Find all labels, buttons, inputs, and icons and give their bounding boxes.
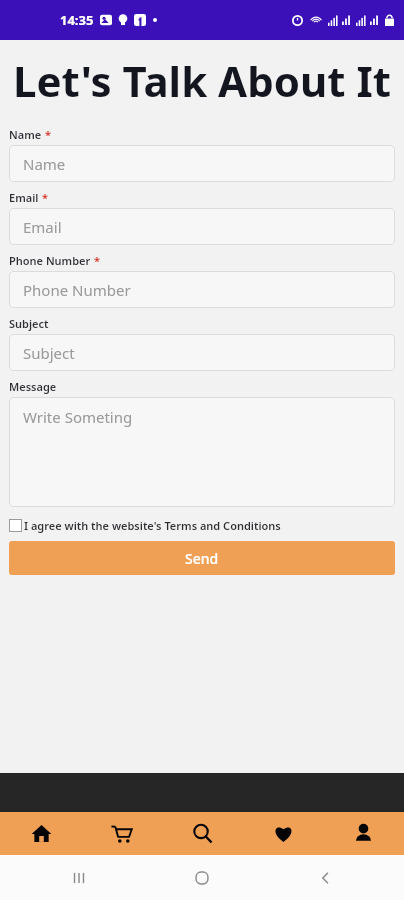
- staticText: Subject: [9, 316, 49, 331]
- button[interactable]: Subject: [9, 334, 395, 371]
- button[interactable]: I agree with the website's Terms and Con…: [9, 518, 395, 533]
- button[interactable]: Recent apps: [34, 855, 124, 900]
- button[interactable]: Back: [281, 855, 371, 900]
- staticText: *: [45, 127, 51, 142]
- staticText: Write Someting: [23, 407, 133, 427]
- staticText: Email: [9, 190, 39, 205]
- staticText: I agree with the website's Terms and Con…: [24, 518, 281, 533]
- staticText: Email: [23, 217, 62, 237]
- staticText: Message: [9, 379, 57, 394]
- button[interactable]: Search: [162, 812, 242, 855]
- button[interactable]: Home: [1, 812, 81, 855]
- button[interactable]: Home: [157, 855, 247, 900]
- staticText: *: [42, 190, 48, 205]
- button[interactable]: Profile: [323, 812, 403, 855]
- button[interactable]: Write Someting: [9, 397, 395, 507]
- button[interactable]: Favorites: [243, 812, 323, 855]
- staticText: *: [94, 253, 100, 268]
- staticText: Subject: [23, 343, 75, 363]
- button[interactable]: Email: [9, 208, 395, 245]
- staticText: Phone Number: [23, 280, 131, 300]
- staticText: Name: [23, 154, 66, 174]
- staticText: Phone Number: [9, 253, 91, 268]
- staticText: Name: [9, 127, 42, 142]
- button[interactable]: Send: [9, 541, 395, 575]
- button[interactable]: Name: [9, 145, 395, 182]
- button[interactable]: Phone Number: [9, 271, 395, 308]
- staticText: Let's Talk About It: [8, 52, 396, 109]
- button[interactable]: Cart: [81, 812, 161, 855]
- staticText: 14:35: [60, 11, 94, 29]
- staticText: Send: [185, 549, 219, 568]
